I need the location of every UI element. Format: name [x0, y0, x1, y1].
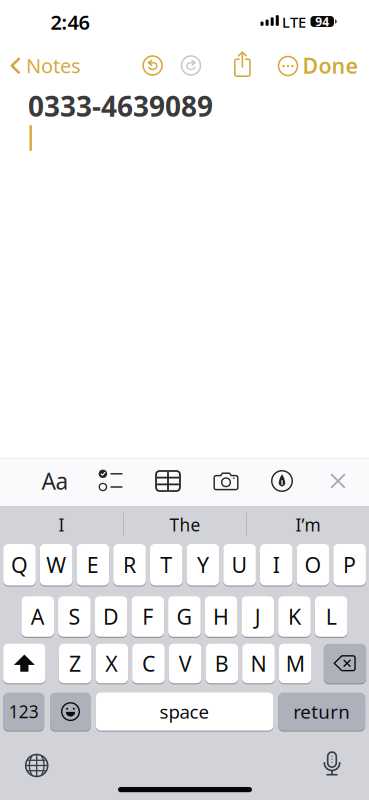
button[interactable]: K [278, 596, 311, 638]
button[interactable]: X [95, 644, 128, 684]
staticText: Aa [41, 466, 68, 496]
staticText: F [142, 602, 153, 631]
button[interactable]: space [96, 693, 273, 732]
staticText: Y [197, 551, 209, 579]
button[interactable]: Done [298, 54, 362, 76]
button[interactable]: Table [155, 470, 181, 492]
button[interactable]: Q [3, 544, 36, 586]
button[interactable]: U [223, 544, 256, 586]
button[interactable]: L [315, 596, 347, 638]
button[interactable]: More [278, 56, 298, 76]
button[interactable]: F [131, 596, 164, 638]
button[interactable]: R [113, 544, 146, 586]
staticText: Q [11, 551, 28, 579]
button[interactable]: I [260, 544, 293, 586]
staticText: B [215, 649, 229, 678]
button[interactable]: I [0, 506, 123, 544]
staticText: 94 [315, 14, 329, 30]
staticText: 2:46 [50, 9, 89, 35]
button[interactable]: H [205, 596, 237, 638]
button[interactable]: Shift [3, 644, 45, 684]
button[interactable]: Dictation [323, 751, 340, 776]
button[interactable]: E [77, 544, 109, 586]
button[interactable]: D [95, 596, 127, 638]
button[interactable]: Redo [181, 55, 201, 75]
button[interactable]: Camera [213, 470, 239, 492]
button[interactable]: N [242, 644, 275, 684]
button[interactable]: I’m [247, 506, 369, 544]
button[interactable]: B [205, 644, 238, 684]
button[interactable]: Delete [324, 644, 366, 684]
staticText: S [68, 602, 80, 631]
staticText: G [176, 602, 192, 631]
staticText: Done [302, 51, 357, 80]
staticText: A [31, 602, 45, 631]
button[interactable]: Checklist [97, 469, 123, 493]
staticText: I [58, 513, 64, 536]
staticText: 0333-4639089 [28, 87, 213, 125]
button[interactable]: A [21, 596, 54, 638]
staticText: T [160, 551, 172, 579]
staticText: D [103, 602, 119, 631]
button[interactable]: O [297, 544, 329, 586]
staticText: P [343, 551, 356, 579]
button[interactable]: 123 [3, 693, 44, 732]
staticText: C [142, 649, 155, 678]
staticText: The [169, 513, 200, 536]
button[interactable]: W [40, 544, 72, 586]
staticText: W [46, 551, 66, 579]
staticText: R [123, 551, 136, 579]
button[interactable]: Undo [143, 55, 163, 75]
staticText: K [288, 602, 301, 631]
button[interactable]: J [241, 596, 274, 638]
staticText: L [326, 602, 337, 631]
button[interactable]: M [279, 644, 311, 684]
button[interactable]: Markup [271, 470, 293, 492]
button[interactable]: V [169, 644, 201, 684]
button[interactable]: Format [33, 466, 77, 496]
staticText: J [255, 602, 261, 631]
button[interactable]: C [132, 644, 165, 684]
button[interactable]: Next keyboard [25, 754, 48, 777]
button[interactable]: P [333, 544, 366, 586]
button[interactable]: return [278, 693, 365, 732]
staticText: X [105, 649, 118, 678]
staticText: M [286, 649, 305, 678]
staticText: O [304, 551, 321, 579]
button[interactable]: Notes [0, 0, 120, 88]
staticText: E [87, 551, 99, 579]
staticText: H [213, 602, 229, 631]
button[interactable]: The [124, 506, 246, 544]
button[interactable]: T [150, 544, 182, 586]
staticText: N [250, 649, 266, 678]
staticText: Z [69, 649, 81, 678]
staticText: return [293, 699, 350, 724]
button[interactable]: Emoji [50, 693, 91, 732]
staticText: Notes [26, 52, 81, 79]
button[interactable]: Z [59, 644, 91, 684]
button[interactable]: Share [232, 51, 252, 77]
button[interactable]: G [168, 596, 201, 638]
button[interactable]: Dismiss keyboard [330, 473, 346, 489]
staticText: LTE [282, 12, 306, 32]
staticText: I [273, 551, 280, 579]
button[interactable]: S [58, 596, 91, 638]
staticText: U [232, 551, 248, 579]
staticText: I’m [295, 513, 320, 536]
staticText: V [179, 649, 192, 678]
button[interactable]: Y [187, 544, 219, 586]
staticText: 123 [9, 700, 39, 723]
staticText: space [160, 699, 210, 724]
